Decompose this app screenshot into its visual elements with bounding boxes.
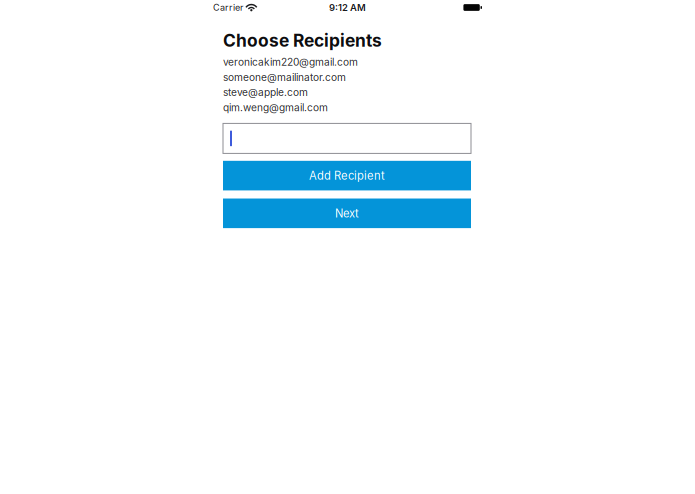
staticText: Next bbox=[335, 206, 359, 220]
staticText: veronicakim220@gmail.com bbox=[223, 56, 358, 68]
staticText: someone@mailinator.com bbox=[223, 71, 346, 83]
staticText: steve@apple.com bbox=[223, 86, 308, 99]
staticText: Add Recipient bbox=[309, 169, 385, 182]
staticText: Choose Recipients bbox=[223, 30, 382, 51]
staticText: qim.weng@gmail.com bbox=[223, 101, 328, 114]
staticText: 9:12 AM bbox=[329, 2, 366, 13]
button[interactable]: Add Recipient bbox=[223, 161, 471, 190]
button[interactable]: Recipient email address bbox=[223, 123, 471, 153]
button[interactable]: Next bbox=[223, 198, 471, 228]
staticText: Carrier bbox=[213, 2, 243, 13]
